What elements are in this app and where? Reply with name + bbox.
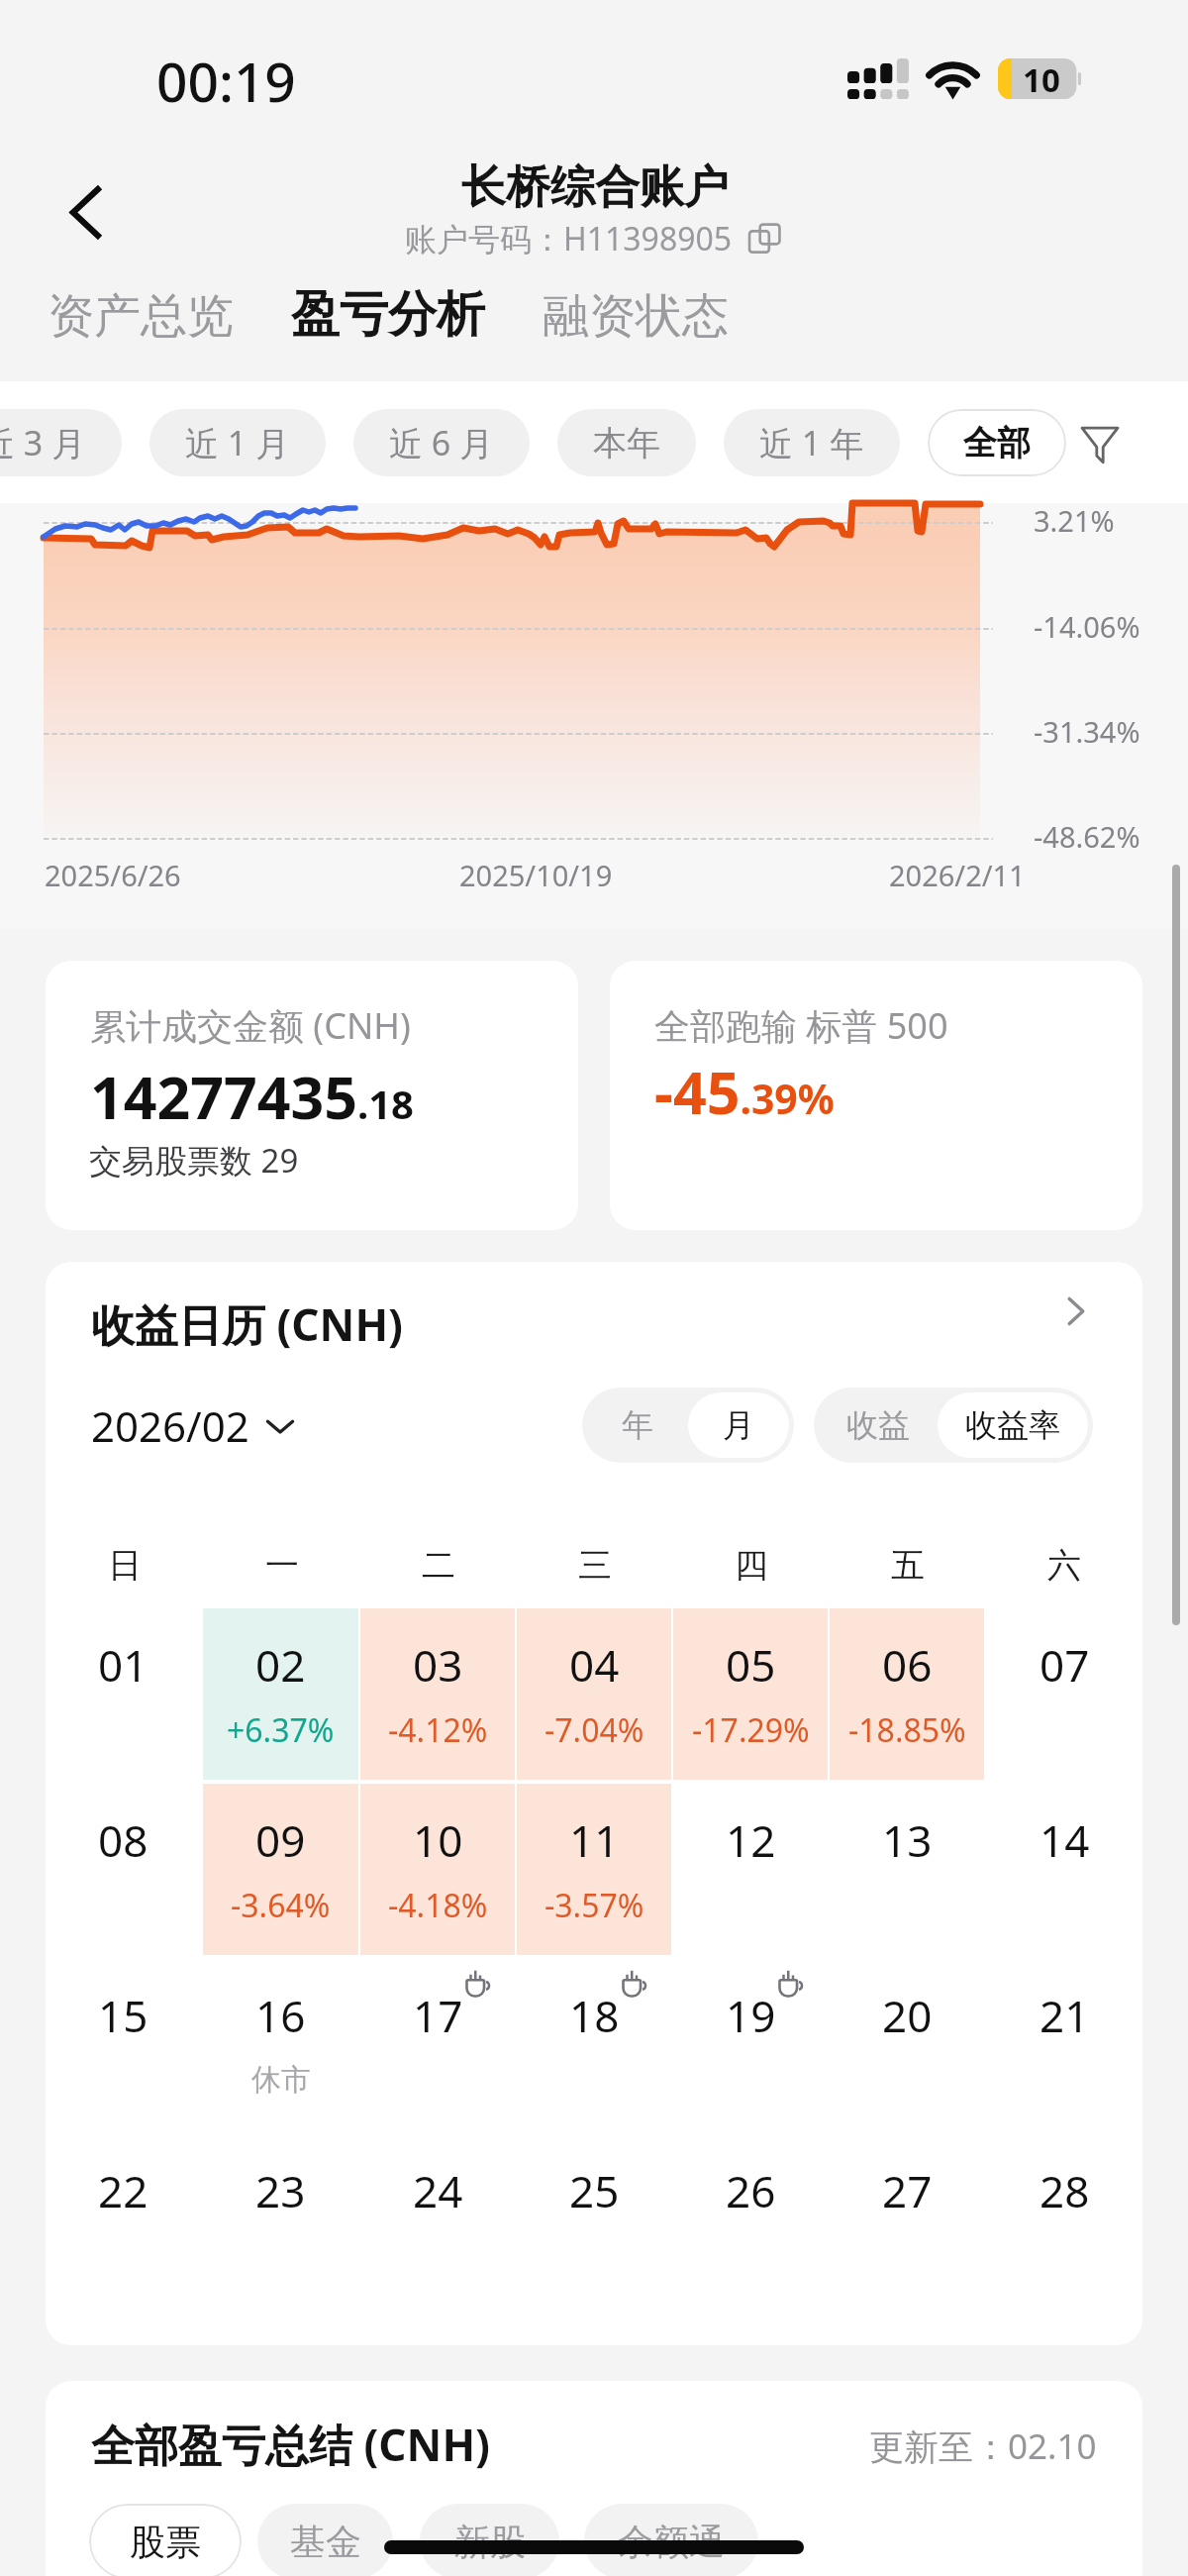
staticText: 账户号码：H11398905 [405,217,733,260]
button[interactable]: 收益 [819,1392,938,1458]
button[interactable]: 01 [46,1608,201,1780]
staticText: 一 [265,1544,299,1587]
staticText: 年 [622,1405,653,1445]
button[interactable]: 基金 [257,2504,393,2576]
staticText: 全部跑输 标普 500 [654,1001,948,1050]
button[interactable]: 收益日历 (CNH) [46,1262,1142,1361]
button[interactable]: 08 [46,1784,201,1955]
button[interactable]: 盈亏分析 [291,284,485,346]
staticText: 06 [882,1635,933,1695]
button[interactable]: 融资状态 [543,287,729,346]
staticText: 20 [882,1986,933,2045]
staticText: 五 [891,1544,925,1587]
button[interactable]: Back [48,174,123,250]
staticText: 基金 [290,2520,361,2564]
staticText: 2025/6/26 [45,856,181,894]
staticText: -45.39% [654,1052,835,1131]
button[interactable]: 余额通 [584,2504,758,2576]
button[interactable]: 资产总览 [48,287,234,346]
staticText: 09 [255,1810,306,1870]
staticText: 四 [735,1544,768,1587]
button[interactable]: 本年 [557,409,696,476]
button[interactable]: 26 [673,2134,828,2306]
staticText: 02 [255,1635,306,1695]
button[interactable]: 17 [360,1959,515,2130]
staticText: 14 [1039,1810,1090,1870]
button[interactable]: 07 [986,1608,1142,1780]
staticText: 01 [98,1635,148,1695]
button[interactable]: 全部 [928,409,1066,476]
button[interactable]: 21 [986,1959,1142,2130]
staticText: -4.12% [388,1708,488,1752]
staticText: 更新至：02.10 [869,2422,1097,2470]
button[interactable]: 28 [986,2134,1142,2306]
staticText: 全部盈亏总结 (CNH) [91,2415,490,2474]
button[interactable]: 03 [360,1608,515,1780]
staticText: 全部 [963,422,1031,464]
staticText: -7.04% [544,1708,644,1752]
staticText: 休市 [251,2061,311,2099]
button[interactable]: 19 [673,1959,828,2130]
button[interactable]: 06 [830,1608,984,1780]
staticText: 28 [1039,2161,1090,2220]
staticText: 融资状态 [543,287,729,346]
button[interactable]: 13 [830,1784,984,1955]
staticText: 15 [98,1986,148,2045]
button[interactable]: 18 [517,1959,671,2130]
button[interactable]: 收益率 [938,1392,1088,1458]
button[interactable]: 近 6 月 [353,409,530,476]
button[interactable]: 24 [360,2134,515,2306]
staticText: 19 [726,1986,776,2045]
staticText: 收益日历 (CNH) [91,1294,403,1354]
button[interactable]: 25 [517,2134,671,2306]
staticText: -18.85% [848,1708,966,1752]
staticText: 05 [726,1635,776,1695]
button[interactable]: 月 [688,1392,789,1458]
button[interactable]: 20 [830,1959,984,2130]
button[interactable]: 股票 [89,2504,242,2576]
button[interactable]: 新股 [420,2504,559,2576]
button[interactable]: 15 [46,1959,201,2130]
staticText: +6.37% [227,1708,335,1752]
button[interactable]: 23 [203,2134,358,2306]
button[interactable]: 近 1 月 [149,409,326,476]
button[interactable]: 16 [203,1959,358,2130]
button[interactable]: 10 [360,1784,515,1955]
button[interactable]: Copy account number [746,220,784,258]
staticText: 16 [255,1986,306,2045]
button[interactable]: 全部跑输 标普 500 [610,961,1142,1230]
staticText: 近 1 年 [759,420,864,465]
button[interactable]: 04 [517,1608,671,1780]
staticText: 长桥综合账户 [461,159,729,216]
button[interactable]: 年 [587,1392,688,1458]
button[interactable]: Filter [1080,403,1120,482]
button[interactable]: 22 [46,2134,201,2306]
staticText: 21 [1039,1986,1090,2045]
staticText: 收益 [846,1405,910,1445]
staticText: 近 6 月 [389,420,494,465]
button[interactable]: 02 [203,1608,358,1780]
button[interactable]: 14 [986,1784,1142,1955]
staticText: 04 [569,1635,620,1695]
staticText: -4.18% [388,1884,488,1927]
button[interactable]: 12 [673,1784,828,1955]
staticText: 日 [108,1544,142,1587]
button[interactable]: 05 [673,1608,828,1780]
button[interactable]: 2026/02 [91,1397,295,1454]
staticText: 新股 [454,2520,526,2564]
button[interactable]: 27 [830,2134,984,2306]
staticText: 26 [726,2161,776,2220]
staticText: 11 [569,1810,620,1870]
button[interactable]: 11 [517,1784,671,1955]
staticText: -17.29% [692,1708,810,1752]
staticText: 交易股票数 29 [89,1138,299,1183]
button[interactable]: 09 [203,1784,358,1955]
staticText: 18 [569,1986,620,2045]
staticText: 近 3 月 [0,420,86,465]
button[interactable]: 累计成交金额 (CNH) [46,961,578,1230]
staticText: 资产总览 [48,287,234,346]
staticText: 2026/2/11 [889,856,1026,894]
button[interactable]: 近 1 年 [724,409,900,476]
button[interactable]: 近 3 月 [0,409,122,476]
staticText: 月 [723,1405,754,1445]
